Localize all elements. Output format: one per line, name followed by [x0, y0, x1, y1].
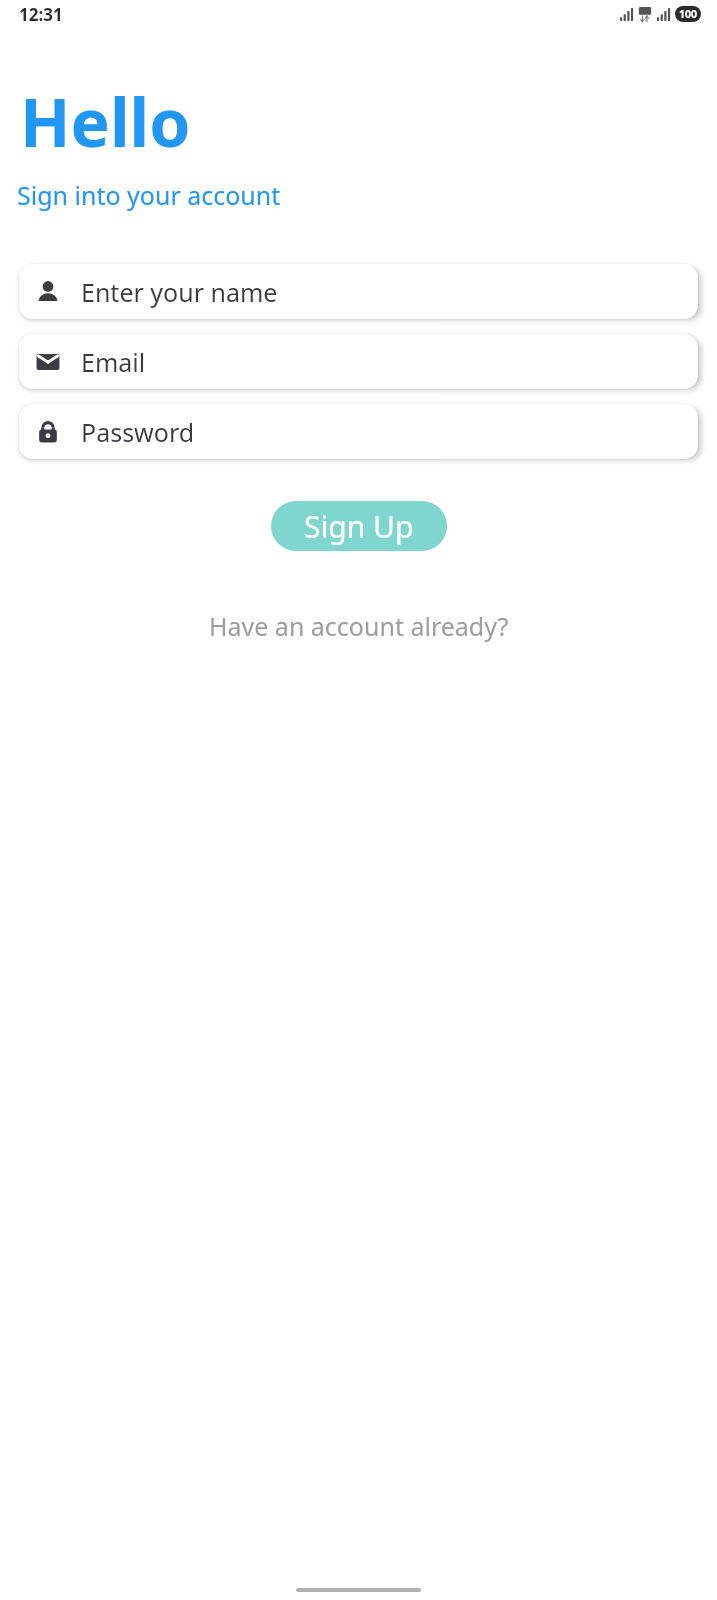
button[interactable]: Sign Up — [271, 501, 447, 551]
staticText: 12:31 — [19, 3, 63, 26]
button[interactable]: Email — [19, 334, 698, 389]
button[interactable]: Password — [19, 404, 698, 459]
staticText: Have an account already? — [209, 609, 509, 643]
staticText: Hello — [20, 76, 191, 166]
staticText: 100 — [679, 7, 698, 21]
staticText: Email — [81, 345, 146, 379]
staticText: Enter your name — [81, 275, 278, 309]
button[interactable]: Enter your name — [19, 264, 698, 319]
staticText: Sign Up — [304, 506, 414, 547]
staticText: Sign into your account — [17, 178, 281, 212]
staticText: Password — [81, 415, 195, 449]
button[interactable]: Have an account already? — [201, 605, 517, 647]
